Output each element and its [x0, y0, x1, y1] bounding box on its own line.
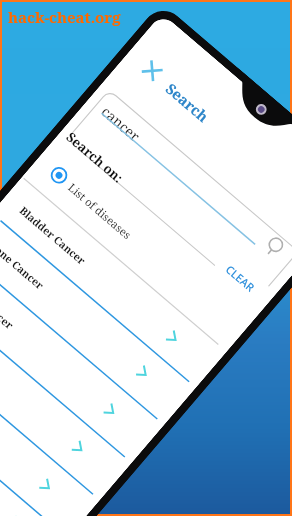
button[interactable]: Search: [162, 78, 214, 126]
button[interactable]: Search: [261, 234, 289, 262]
button[interactable]: CLEAR: [212, 251, 270, 305]
staticText: List of diseases: [65, 180, 135, 242]
button[interactable]: Cervical Cancer: [0, 326, 93, 516]
button[interactable]: List of diseases: [44, 160, 204, 302]
staticText: CLEAR: [223, 262, 258, 295]
staticText: hack-cheat.org: [8, 7, 121, 27]
button[interactable]: Bone Cancer: [0, 212, 189, 419]
staticText: Search: [162, 78, 214, 126]
staticText: Search on:: [63, 128, 128, 187]
staticText: Bone Cancer: [0, 238, 47, 293]
button[interactable]: [66, 89, 292, 302]
button[interactable]: Clear query: [132, 51, 172, 90]
staticText: Bladder Cancer: [17, 203, 89, 268]
staticText: cancer: [98, 102, 144, 145]
button[interactable]: Bladder Cancer: [0, 177, 219, 382]
button[interactable]: Colon Cancer: [0, 363, 61, 516]
button[interactable]: Breast Cancer: [0, 288, 125, 495]
staticText: Brain Cancer: [0, 276, 17, 332]
button[interactable]: Brain Cancer: [0, 250, 157, 457]
